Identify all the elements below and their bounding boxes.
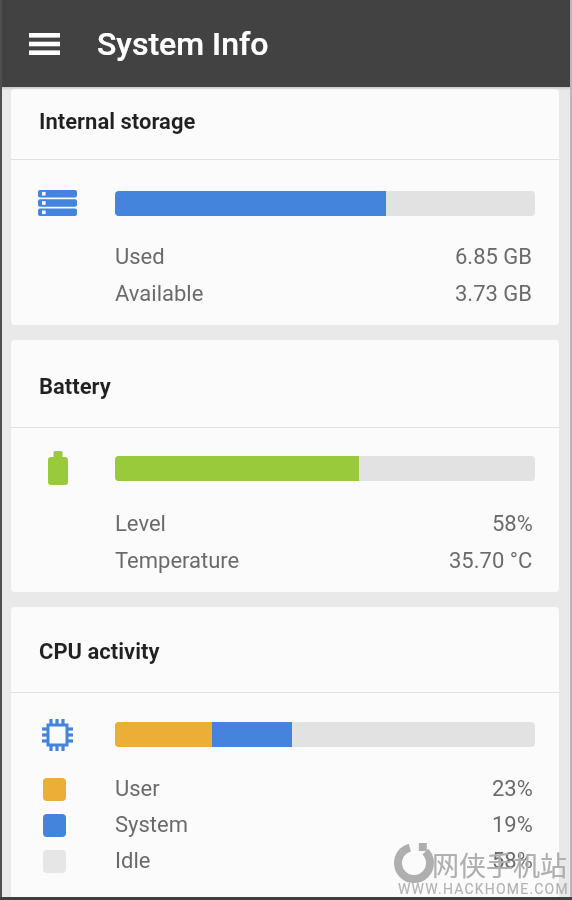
staticText: Temperature (115, 548, 240, 574)
staticText: CPU activity (39, 639, 160, 665)
staticText: Available (115, 281, 204, 307)
staticText: System Info (97, 25, 269, 63)
staticText: 58% (492, 848, 533, 874)
staticText: 3.73 GB (455, 281, 533, 307)
staticText: 网侠手机站 (432, 845, 567, 884)
staticText: Internal storage (39, 109, 196, 135)
staticText: 23% (492, 776, 533, 802)
staticText: User (115, 776, 160, 802)
staticText: Used (115, 244, 165, 270)
staticText: 6.85 GB (455, 244, 533, 270)
staticText: Battery (39, 374, 111, 400)
staticText: 19% (492, 812, 533, 838)
staticText: 35.70 °C (449, 548, 533, 574)
staticText: Idle (115, 848, 151, 874)
staticText: System (115, 812, 188, 838)
staticText: Level (115, 511, 166, 537)
button[interactable] (17, 17, 71, 71)
staticText: 58% (492, 511, 533, 537)
staticText: WWW.HACKHOME.COM (398, 881, 569, 897)
